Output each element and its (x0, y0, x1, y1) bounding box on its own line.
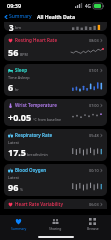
button[interactable]: Summary (0, 12, 36, 21)
staticText: Summary (11, 226, 27, 231)
staticText: Latest (8, 175, 19, 180)
staticText: hr (15, 87, 19, 92)
staticText: Blood Oxygen (15, 167, 47, 173)
staticText: 4G (85, 3, 91, 9)
staticText: 00:10 (89, 168, 99, 173)
staticText: Sleep (15, 67, 28, 73)
staticText: Heart Rate Variability (15, 201, 63, 207)
button[interactable]: Sharing (37, 215, 74, 234)
staticText: Respiratory Rate (15, 132, 53, 138)
staticText: Resting Heart Rate (15, 37, 58, 43)
button[interactable]: Blood Oxygen (4, 164, 107, 196)
staticText: 09:39 (7, 2, 22, 9)
button[interactable]: Heart Rate Variability (4, 199, 107, 209)
button[interactable]: Respiratory Rate (4, 129, 107, 161)
staticText: % (20, 187, 23, 192)
staticText: 06:03 (89, 202, 99, 207)
staticText: km (15, 25, 21, 30)
staticText: +0.05 (8, 111, 32, 123)
staticText: 96 (8, 181, 19, 193)
staticText: Time Asleep (8, 75, 30, 80)
button[interactable]: Resting Heart Rate (4, 34, 107, 61)
staticText: 05:48 (89, 133, 99, 138)
staticText: 6 (8, 81, 14, 93)
staticText: 08:03 (89, 38, 99, 43)
staticText: Browse (87, 226, 99, 231)
staticText: °C from baseline (33, 117, 61, 122)
staticText: Latest (8, 140, 19, 145)
staticText: 3 (9, 22, 14, 31)
staticText: 56 (8, 46, 19, 58)
button[interactable]: Browse (74, 215, 111, 234)
staticText: 07:01 (89, 68, 99, 73)
staticText: 07:00 (89, 103, 99, 108)
button[interactable]: Sleep (4, 64, 107, 96)
staticText: breaths/min (27, 152, 48, 157)
button[interactable]: 3 (4, 22, 107, 31)
staticText: BPM (20, 52, 28, 57)
button[interactable]: Summary (0, 215, 37, 234)
button[interactable]: Wrist Temperature (4, 99, 107, 126)
staticText: All Health Data (37, 13, 75, 20)
staticText: Wrist Temperature (15, 102, 57, 108)
staticText: Summary (9, 13, 32, 20)
staticText: 17.5 (8, 146, 26, 158)
staticText: Sharing (49, 226, 62, 231)
